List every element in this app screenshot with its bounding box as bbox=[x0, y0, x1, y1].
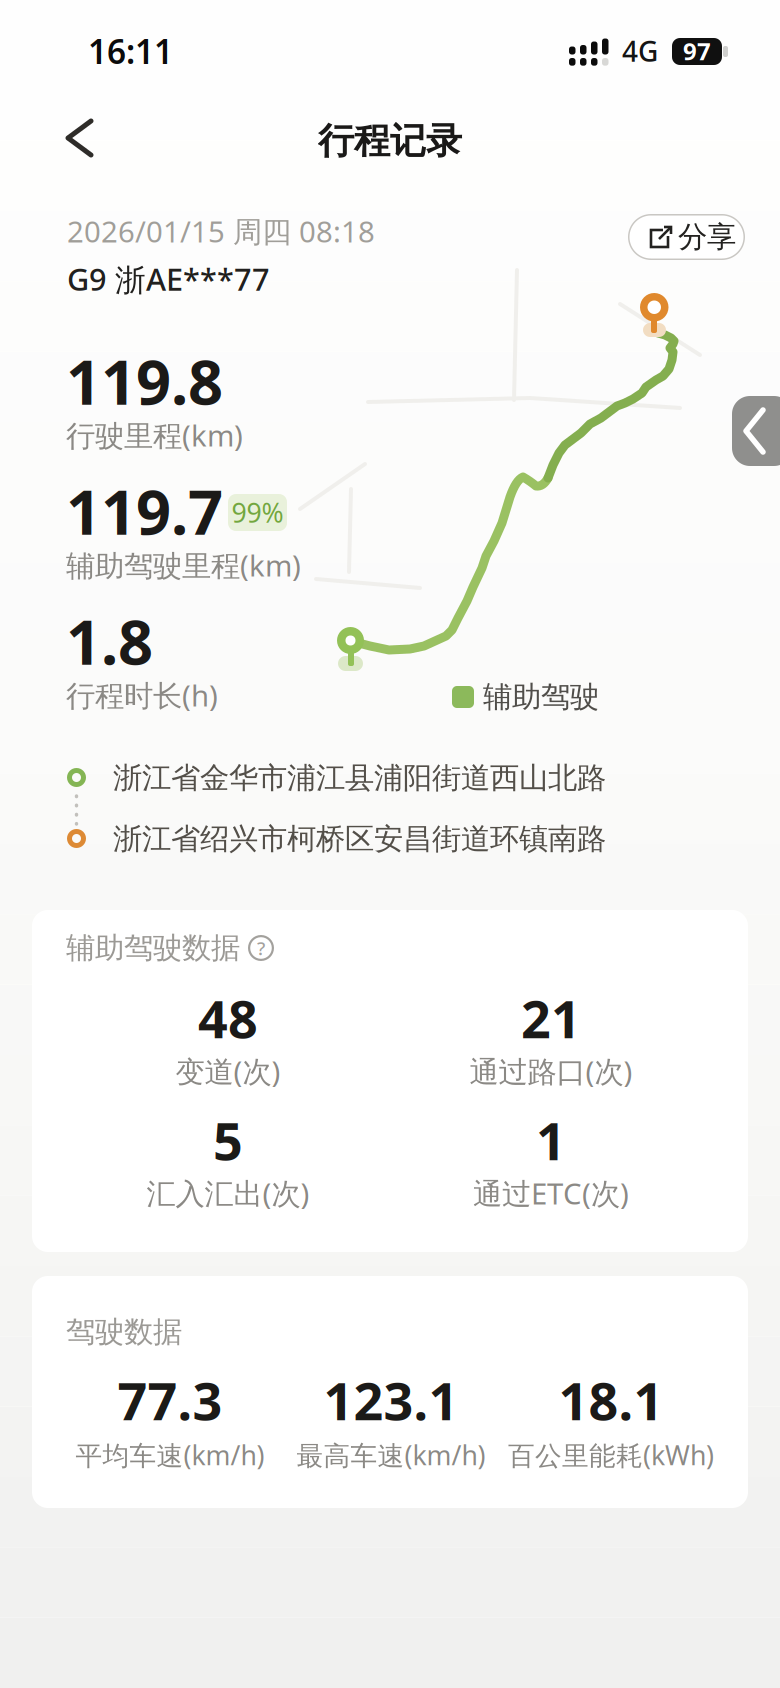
staticText: 分享 bbox=[678, 219, 736, 255]
button[interactable]: 收起 bbox=[732, 396, 780, 466]
staticText: 行程记录 bbox=[318, 119, 462, 163]
staticText: 1.8 bbox=[66, 600, 153, 682]
staticText: 5 bbox=[213, 1105, 243, 1175]
staticText: G9 浙AE***77 bbox=[67, 259, 270, 299]
staticText: 驾驶数据 bbox=[66, 1314, 182, 1350]
staticText: 百公里能耗(kWh) bbox=[508, 1437, 714, 1473]
staticText: 97 bbox=[683, 35, 711, 67]
staticText: 48 bbox=[198, 983, 258, 1053]
staticText: 最高车速(km/h) bbox=[296, 1437, 485, 1473]
staticText: 21 bbox=[521, 983, 581, 1053]
staticText: 变道(次) bbox=[175, 1051, 280, 1090]
staticText: 通过ETC(次) bbox=[473, 1173, 629, 1212]
staticText: 2026/01/15 周四 08:18 bbox=[67, 211, 375, 250]
staticText: 16:11 bbox=[88, 29, 173, 73]
staticText: 辅助驾驶 bbox=[483, 679, 599, 715]
staticText: 99% bbox=[231, 495, 283, 530]
staticText: 辅助驾驶里程(km) bbox=[66, 545, 301, 584]
staticText: 平均车速(km/h) bbox=[75, 1437, 264, 1473]
staticText: 浙江省金华市浦江县浦阳街道西山北路 bbox=[113, 760, 606, 796]
staticText: 123.1 bbox=[323, 1365, 458, 1435]
staticText: 119.8 bbox=[66, 340, 223, 422]
staticText: 行驶里程(km) bbox=[66, 415, 243, 454]
staticText: 通过路口(次) bbox=[469, 1051, 632, 1090]
button[interactable]: 分享 bbox=[628, 214, 745, 260]
staticText: 辅助驾驶数据 bbox=[66, 930, 240, 966]
staticText: 119.7 bbox=[66, 470, 223, 552]
staticText: 行程时长(h) bbox=[66, 675, 218, 714]
staticText: 浙江省绍兴市柯桥区安昌街道环镇南路 bbox=[113, 821, 606, 857]
staticText: 汇入汇出(次) bbox=[146, 1173, 309, 1212]
staticText: 18.1 bbox=[558, 1365, 663, 1435]
button[interactable]: 辅助驾驶数据说明 bbox=[248, 935, 274, 961]
staticText: 77.3 bbox=[117, 1365, 222, 1435]
staticText: 1 bbox=[536, 1105, 566, 1175]
button[interactable]: Back bbox=[62, 118, 106, 158]
staticText: ? bbox=[257, 936, 265, 960]
staticText: 4G bbox=[622, 32, 658, 70]
